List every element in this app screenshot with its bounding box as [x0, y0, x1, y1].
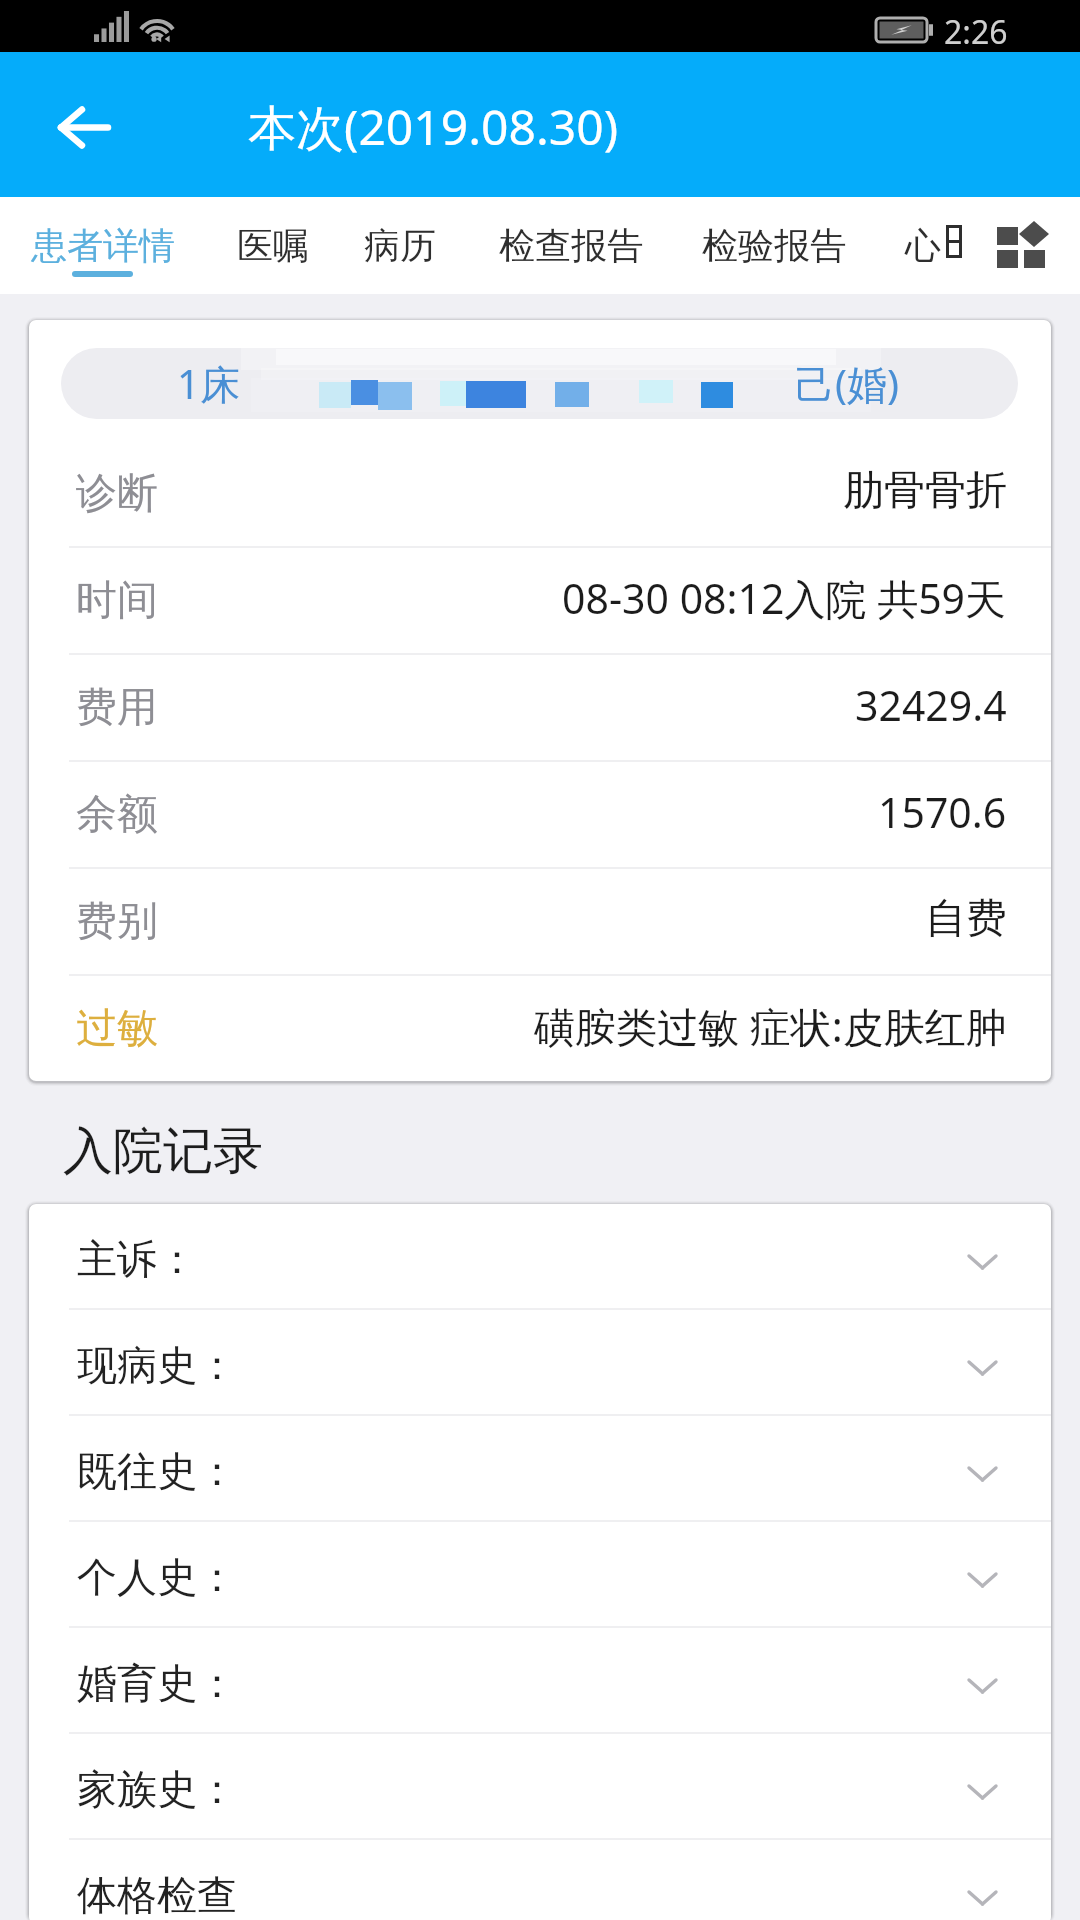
staticText: 家族史：: [77, 1764, 237, 1814]
button[interactable]: 患者详情: [31, 197, 211, 294]
staticText: 诊断: [76, 468, 158, 520]
staticText: 时间: [76, 575, 158, 627]
staticText: 入院记录: [63, 1120, 263, 1183]
staticText: 费别: [76, 896, 158, 948]
staticText: 检验报告: [702, 223, 846, 268]
staticText: 余额: [76, 789, 158, 841]
staticText: 现病史：: [77, 1340, 237, 1390]
staticText: 32429.4: [855, 677, 1007, 733]
staticText: 2:26: [944, 10, 1008, 54]
button[interactable]: Back: [33, 79, 133, 169]
button[interactable]: 主诉：: [29, 1204, 1051, 1310]
button[interactable]: 心: [905, 197, 965, 294]
button[interactable]: 时间: [29, 548, 1051, 655]
button[interactable]: 费别: [29, 869, 1051, 976]
staticText: 心: [905, 223, 941, 268]
staticText: 既往史：: [77, 1446, 237, 1496]
staticText: 08-30 08:12入院 共59天: [562, 570, 1007, 626]
button[interactable]: 诊断: [29, 441, 1051, 548]
button[interactable]: 检验报告: [702, 197, 882, 294]
button[interactable]: 检查报告: [499, 197, 679, 294]
staticText: 体格检查: [77, 1870, 237, 1920]
staticText: 磺胺类过敏 症状:皮肤红肿: [534, 998, 1007, 1054]
button[interactable]: 既往史：: [29, 1416, 1051, 1522]
staticText: 婚育史：: [77, 1658, 237, 1708]
staticText: 检查报告: [499, 223, 643, 268]
button[interactable]: 费用: [29, 655, 1051, 762]
staticText: 主诉：: [77, 1234, 197, 1284]
button[interactable]: 体格检查: [29, 1840, 1051, 1920]
button[interactable]: 过敏: [29, 976, 1051, 1081]
staticText: 本次(2019.08.30): [248, 94, 619, 160]
staticText: 患者详情: [31, 223, 175, 268]
button[interactable]: 家族史：: [29, 1734, 1051, 1840]
staticText: 肋骨骨折: [843, 465, 1007, 517]
staticText: 过敏: [76, 1003, 158, 1055]
staticText: 病历: [364, 223, 436, 268]
staticText: 个人史：: [77, 1552, 237, 1602]
button[interactable]: 病历: [364, 197, 464, 294]
button[interactable]: More tabs: [993, 221, 1055, 273]
button[interactable]: 现病史：: [29, 1310, 1051, 1416]
button[interactable]: 余额: [29, 762, 1051, 869]
staticText: 1床: [177, 356, 240, 411]
staticText: 医嘱: [237, 223, 309, 268]
staticText: 自费: [925, 893, 1007, 945]
staticText: 己(婚): [795, 356, 899, 411]
staticText: 费用: [76, 682, 158, 734]
button[interactable]: 个人史：: [29, 1522, 1051, 1628]
button[interactable]: 婚育史：: [29, 1628, 1051, 1734]
button[interactable]: 医嘱: [237, 197, 337, 294]
staticText: 1570.6: [878, 784, 1007, 840]
